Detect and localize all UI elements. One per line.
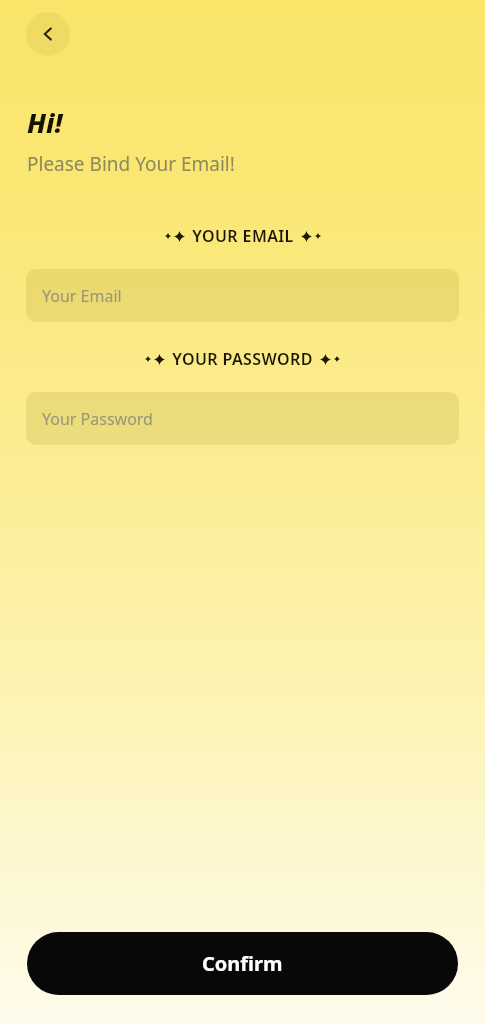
staticText: Your Email <box>42 285 122 307</box>
staticText: Please Bind Your Email! <box>27 151 235 177</box>
staticText: YOUR EMAIL <box>192 225 294 247</box>
staticText: YOUR PASSWORD <box>172 348 313 370</box>
button[interactable]: Your Email <box>26 269 459 322</box>
staticText: Hi! <box>27 104 63 141</box>
button[interactable]: Back <box>26 12 70 56</box>
staticText: Confirm <box>202 950 283 977</box>
staticText: Your Password <box>42 408 153 430</box>
button[interactable]: Confirm <box>27 932 458 995</box>
button[interactable]: Your Password <box>26 392 459 445</box>
